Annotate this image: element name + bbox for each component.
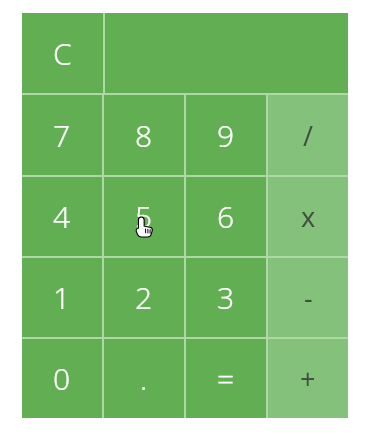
button[interactable]: C bbox=[22, 13, 103, 93]
staticText: - bbox=[304, 279, 313, 316]
staticText: 4 bbox=[53, 196, 71, 237]
staticText: 1 bbox=[53, 277, 71, 318]
staticText: 0 bbox=[53, 358, 71, 399]
staticText: 2 bbox=[135, 277, 153, 318]
staticText: = bbox=[217, 358, 235, 399]
button[interactable]: / bbox=[268, 95, 348, 175]
staticText: x bbox=[301, 198, 316, 235]
button[interactable]: 3 bbox=[186, 258, 266, 337]
staticText: . bbox=[140, 358, 148, 399]
staticText: 3 bbox=[217, 277, 235, 318]
staticText: C bbox=[53, 33, 72, 74]
button[interactable]: 6 bbox=[186, 177, 266, 256]
button[interactable]: . bbox=[104, 339, 184, 418]
button[interactable]: 5 bbox=[104, 177, 184, 256]
button[interactable]: 0 bbox=[22, 339, 102, 418]
button[interactable]: - bbox=[268, 258, 348, 337]
staticText: + bbox=[300, 360, 316, 397]
button[interactable]: 9 bbox=[186, 95, 266, 175]
button[interactable]: 7 bbox=[22, 95, 102, 175]
button[interactable]: 1 bbox=[22, 258, 102, 337]
button[interactable]: + bbox=[268, 339, 348, 418]
staticText: 8 bbox=[135, 115, 153, 156]
button[interactable]: = bbox=[186, 339, 266, 418]
staticText: / bbox=[303, 117, 314, 154]
button[interactable]: x bbox=[268, 177, 348, 256]
staticText: 9 bbox=[217, 115, 235, 156]
staticText: 7 bbox=[53, 115, 71, 156]
button[interactable]: 8 bbox=[104, 95, 184, 175]
button[interactable]: 4 bbox=[22, 177, 102, 256]
staticText: 6 bbox=[217, 196, 235, 237]
staticText: 5 bbox=[135, 196, 153, 237]
button[interactable]: 2 bbox=[104, 258, 184, 337]
